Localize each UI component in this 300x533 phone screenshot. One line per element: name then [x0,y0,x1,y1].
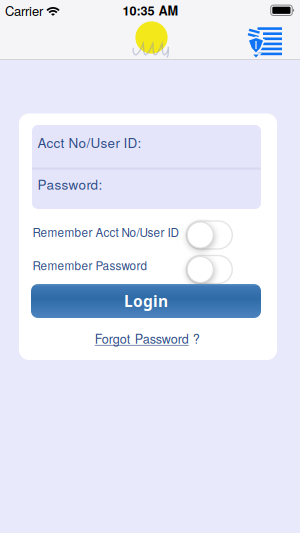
staticText: Remember Acct No/User ID [32,224,178,240]
staticText: Acct No/User ID: [37,133,141,152]
button[interactable]: Login [31,284,261,318]
button[interactable]: Password: [32,167,261,209]
staticText: Forgot Password [95,329,189,347]
staticText: Password: [37,174,102,193]
button[interactable]: Sign Up [246,24,286,60]
staticText: 10:35 AM [122,1,178,19]
staticText: Carrier [5,1,43,20]
button[interactable]: Acct No/User ID: [32,125,261,167]
button[interactable]: Forgot Password [95,329,200,347]
button[interactable]: Remember Acct No/User ID [186,221,232,249]
button[interactable]: Remember Password [186,255,232,283]
staticText: Login [124,290,168,311]
staticText: ? [189,329,200,347]
staticText: Remember Password [32,257,147,274]
